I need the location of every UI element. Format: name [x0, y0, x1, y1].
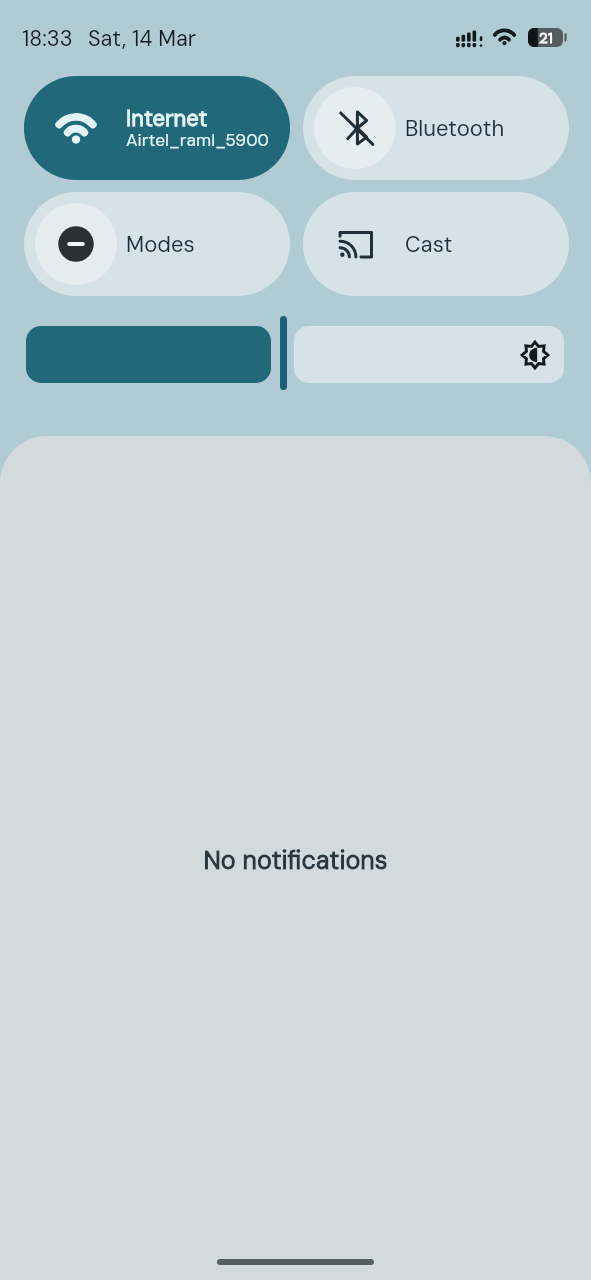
staticText: Internet [126, 104, 208, 133]
staticText: No notifications [203, 844, 388, 877]
staticText: 21 [539, 28, 553, 47]
button[interactable]: Brightness [294, 326, 564, 383]
button[interactable]: Modes [24, 192, 290, 296]
button[interactable]: Cast [303, 192, 569, 296]
button[interactable]: Internet [24, 76, 290, 180]
staticText: 18:33 [22, 25, 73, 53]
staticText: Bluetooth [405, 114, 505, 143]
staticText: Cast [405, 230, 453, 259]
staticText: Sat, 14 Mar [88, 25, 197, 53]
button[interactable]: Bluetooth [303, 76, 569, 180]
button[interactable]: Volume [26, 326, 271, 383]
staticText: Airtel_raml_5900 [126, 129, 269, 152]
staticText: Modes [126, 230, 195, 259]
